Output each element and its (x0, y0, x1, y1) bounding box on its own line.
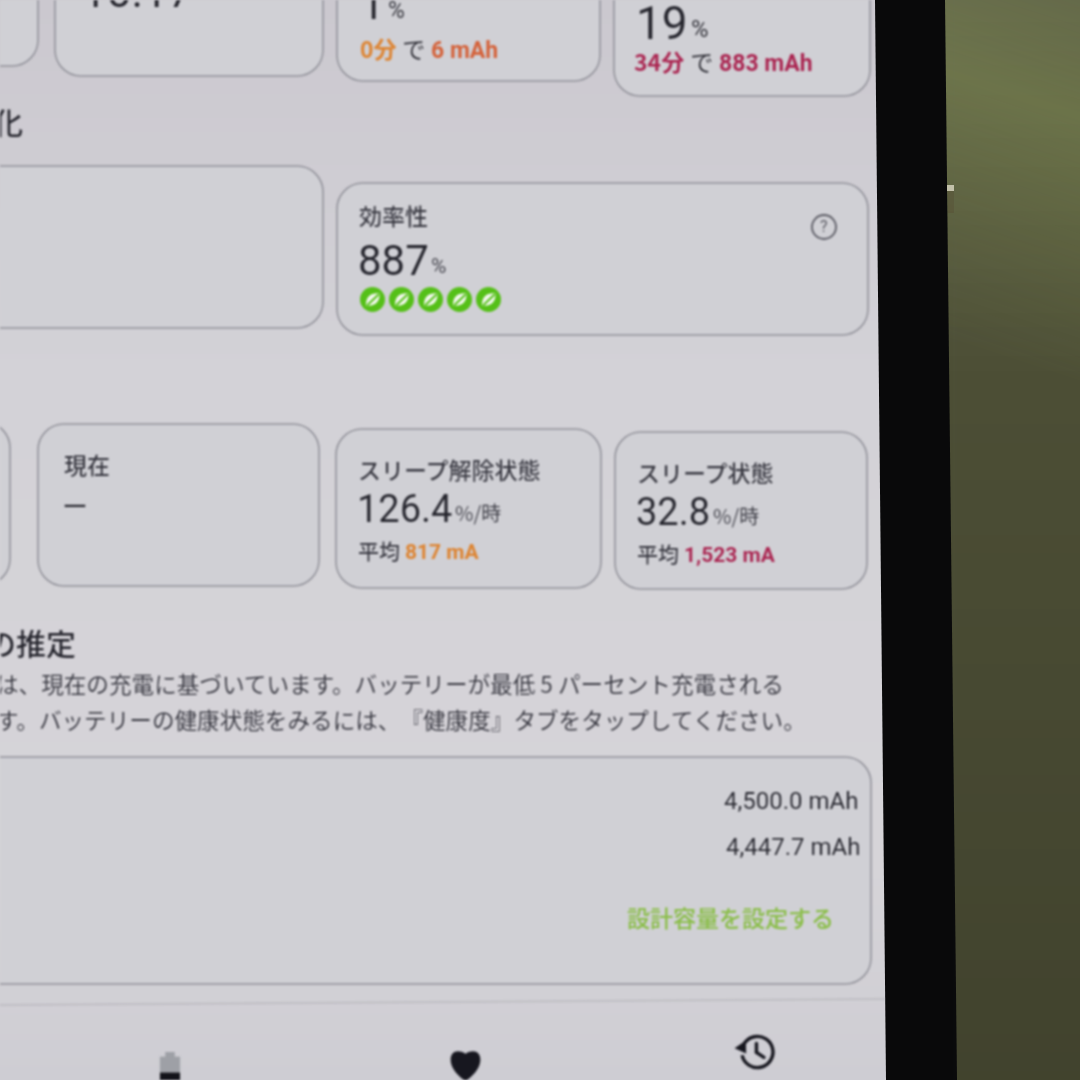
staticText: 4,500.0 mAh (724, 787, 859, 815)
staticText: 化 (0, 99, 23, 142)
staticText: 1,523 mA (684, 543, 775, 568)
button[interactable]: Screen on time (55, 0, 323, 76)
staticText: は、現在の充電に基づいています。バッテリーが最低 5 パーセント充電される (0, 667, 784, 700)
button[interactable]: Discharged 19 percent (614, 0, 870, 96)
staticText: 32.8 (636, 490, 711, 535)
staticText: 883 mAh (719, 50, 813, 77)
staticText: 19 (636, 0, 688, 50)
staticText: ー (62, 486, 89, 524)
staticText: 0分 (360, 31, 397, 64)
staticText: % (388, 0, 405, 24)
staticText: で (685, 44, 719, 77)
staticText: %/時 (713, 501, 760, 530)
button[interactable]: 現在 (38, 424, 319, 586)
staticText: 4,447.7 mAh (726, 833, 861, 861)
staticText: 効率性 (359, 198, 428, 231)
staticText: ? (820, 217, 828, 236)
button[interactable]: スリープ状態 (615, 432, 867, 589)
staticText: す。バッテリーの健康状態をみるには、『健康度』タブをタップしてください。 (0, 703, 806, 736)
staticText: 6 mAh (431, 37, 499, 64)
staticText: % (691, 15, 709, 43)
staticText: 887 (358, 236, 429, 285)
staticText: % (431, 254, 447, 279)
button[interactable]: Battery (158, 1052, 182, 1080)
button[interactable]: Health (445, 1045, 486, 1080)
staticText: 設計容量を設定する (627, 900, 834, 933)
staticText: スリープ解除状態 (358, 452, 541, 485)
staticText: %/時 (455, 498, 502, 527)
button[interactable]: Charged 1 percent (337, 0, 600, 81)
staticText: スリープ状態 (637, 455, 774, 488)
staticText: 10.17 (82, 0, 193, 18)
staticText: 平均 (358, 535, 405, 565)
button[interactable]: History (729, 1031, 773, 1073)
button[interactable]: Help (806, 209, 842, 245)
staticText: で (397, 31, 431, 64)
staticText: の推定 (0, 620, 76, 663)
staticText: 126.4 (357, 487, 453, 532)
button[interactable]: Card (0, 166, 323, 328)
staticText: 34分 (634, 44, 685, 77)
staticText: 817 mA (405, 540, 479, 565)
staticText: 1 (360, 0, 385, 30)
button[interactable]: 効率性 (337, 183, 868, 335)
staticText: 平均 (637, 538, 684, 568)
button[interactable]: スリープ解除状態 (336, 429, 601, 588)
button[interactable]: 4,500.0 mAh (0, 757, 871, 984)
staticText: 現在 (64, 447, 110, 480)
